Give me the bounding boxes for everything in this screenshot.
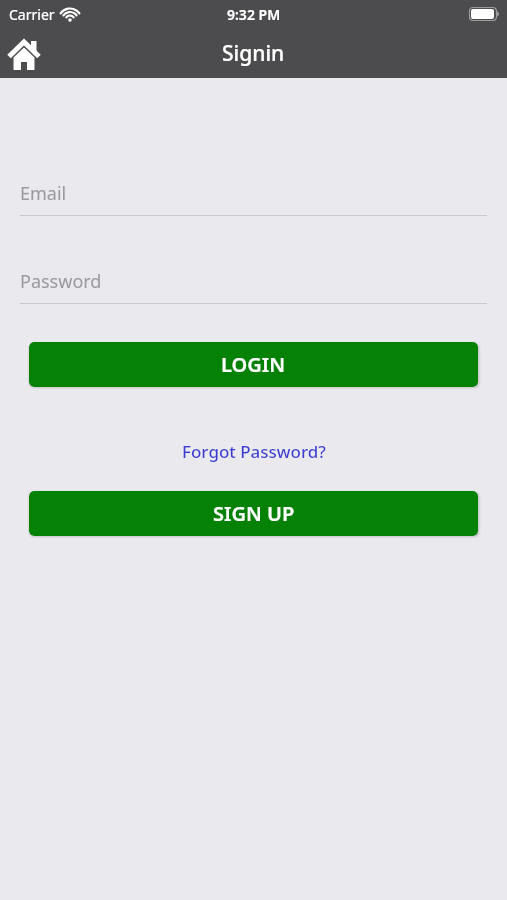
button[interactable]: Password (20, 266, 487, 304)
staticText: SIGN UP (213, 500, 295, 527)
staticText: Signin (222, 39, 285, 68)
button[interactable]: Email (20, 178, 487, 216)
staticText: 9:32 PM (227, 5, 281, 24)
button[interactable]: SIGN UP (29, 491, 478, 536)
staticText: LOGIN (221, 351, 286, 378)
staticText: Carrier (9, 5, 55, 24)
button[interactable]: Forgot Password? (182, 440, 326, 463)
staticText: Password (20, 269, 102, 294)
staticText: Email (20, 181, 67, 206)
button[interactable]: LOGIN (29, 342, 478, 387)
button[interactable] (7, 37, 41, 70)
